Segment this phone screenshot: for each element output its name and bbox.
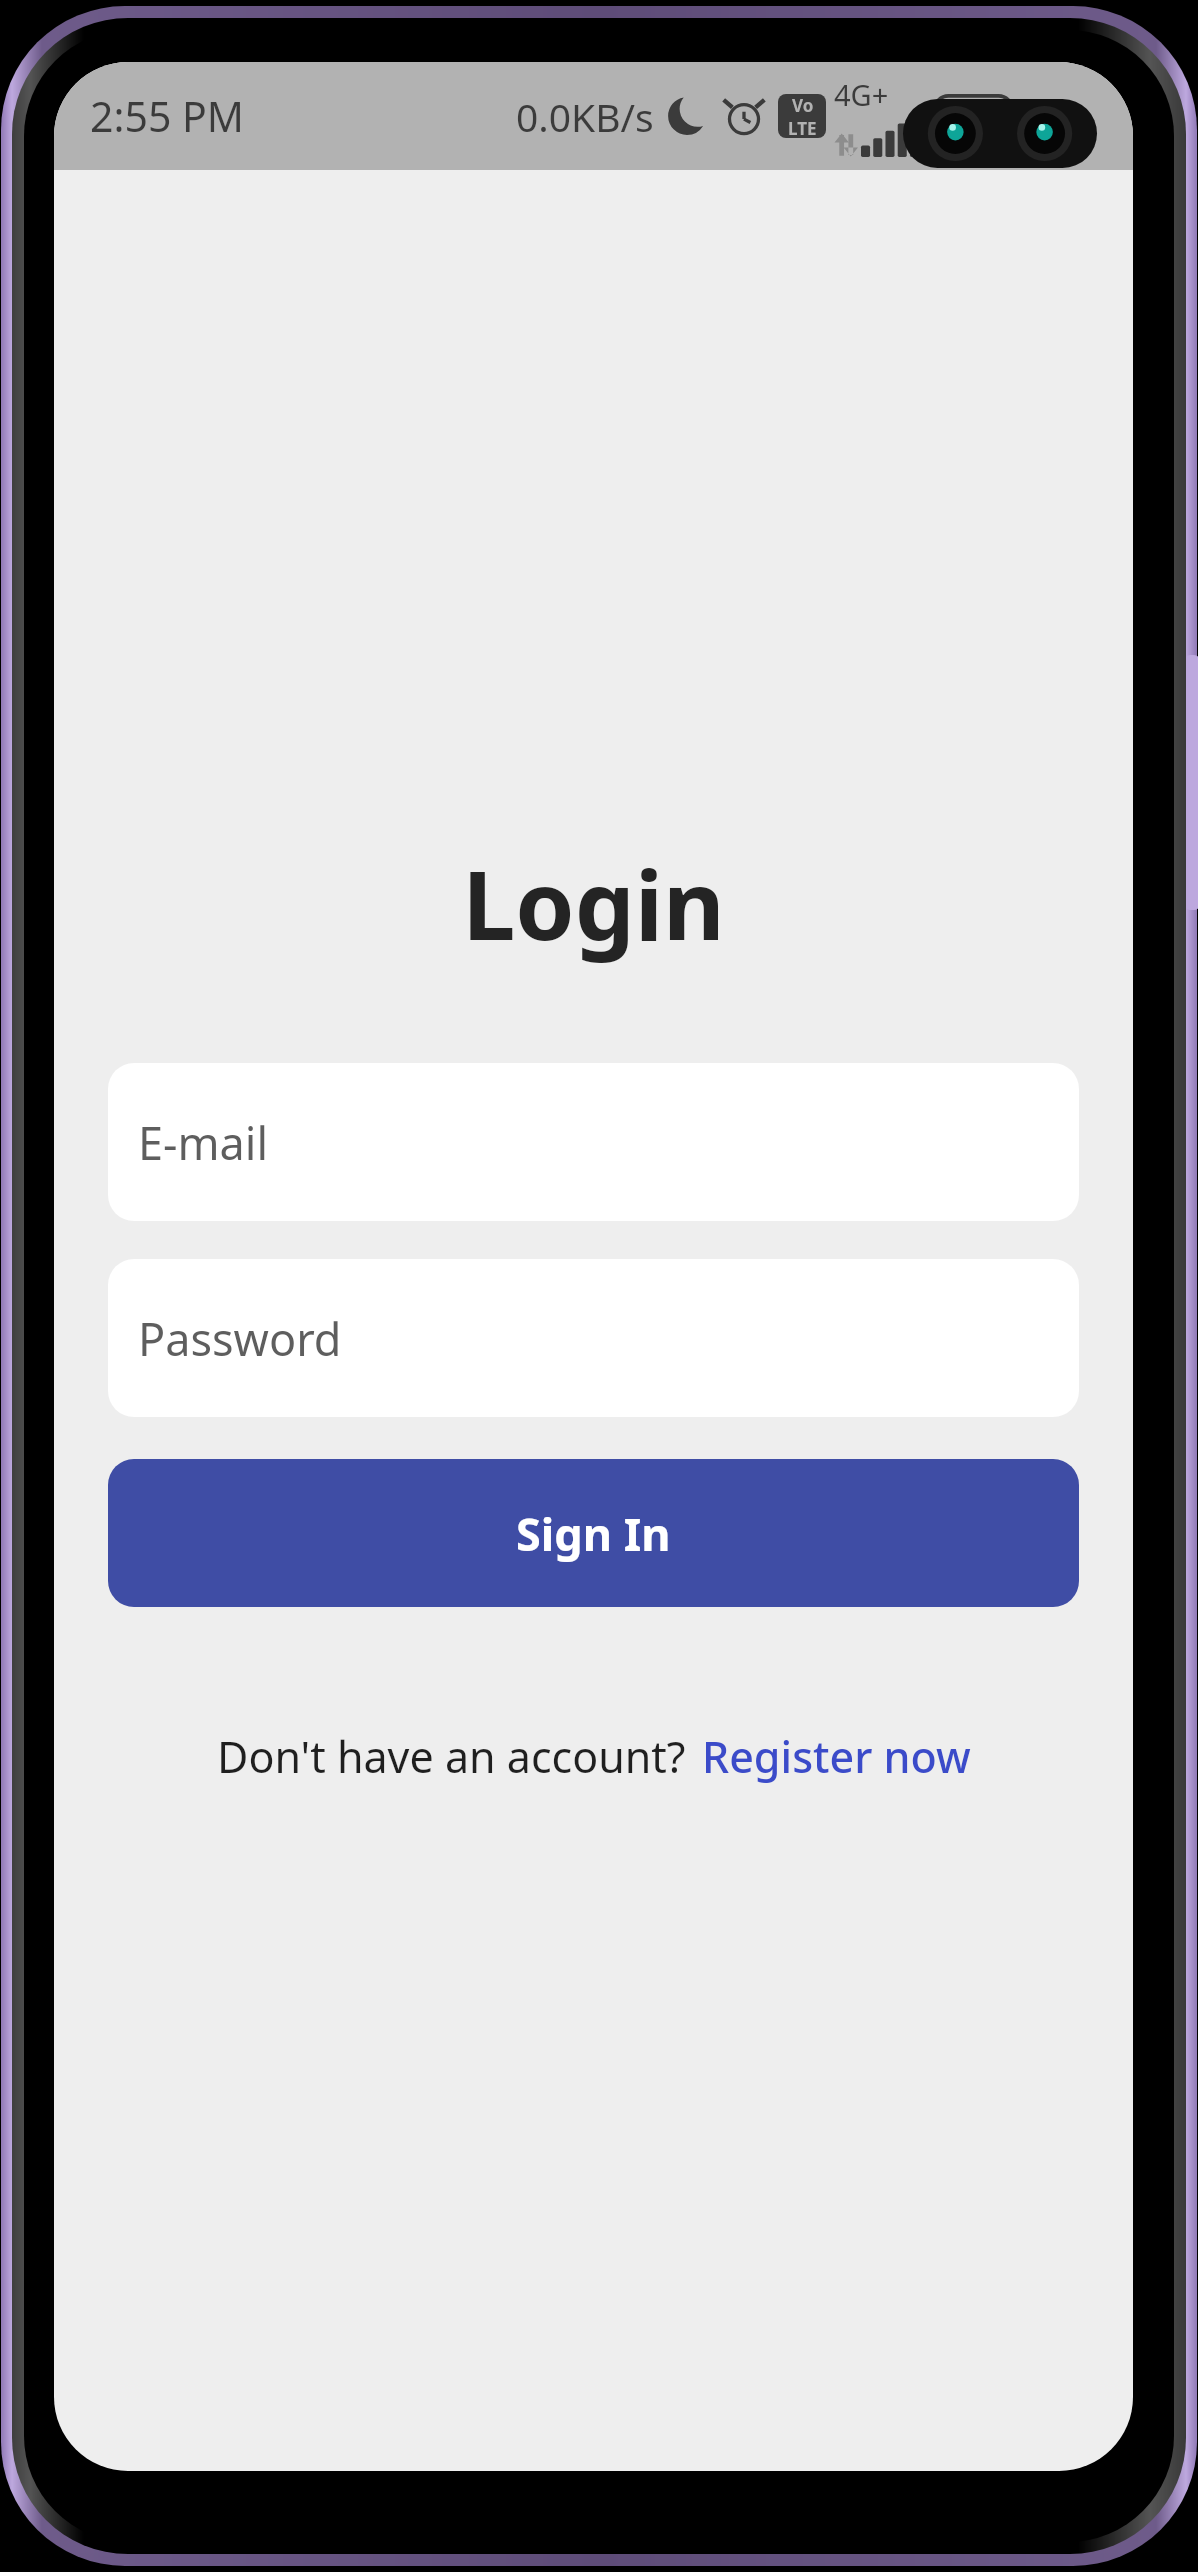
staticText: Sign In [516,1503,671,1564]
staticText: 0.0KB/s [516,90,654,143]
staticText: Login [462,838,725,967]
staticText: Register now [702,1727,971,1786]
button[interactable]: Sign In [108,1459,1079,1607]
staticText: LTE [788,117,817,138]
staticText: 2:55 PM [90,88,244,144]
button[interactable]: Password [108,1259,1079,1417]
staticText: Vo [792,94,814,117]
staticText: Don't have an account? [217,1727,686,1786]
button[interactable]: Register now [702,1727,971,1786]
button[interactable]: E-mail [108,1063,1079,1221]
staticText: E-mail [138,1112,269,1173]
staticText: Password [138,1308,342,1369]
staticText: 4G+ [834,75,889,114]
